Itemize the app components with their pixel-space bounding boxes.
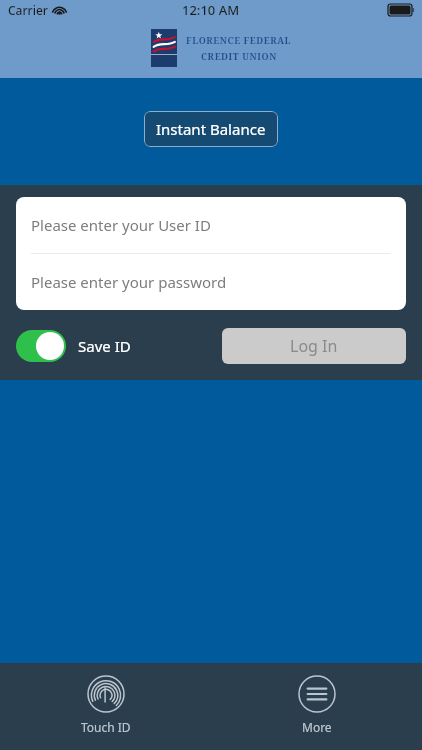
button[interactable]: Log In	[222, 328, 406, 364]
staticText: FLORENCE FEDERAL	[186, 34, 292, 46]
button[interactable]: Save ID	[16, 330, 131, 362]
button[interactable]: Touch ID	[57, 673, 155, 737]
button[interactable]: Please enter your User ID	[16, 197, 406, 253]
staticText: Please enter your User ID	[31, 215, 211, 235]
staticText: Save ID	[78, 336, 131, 356]
button[interactable]: Please enter your password	[16, 254, 406, 310]
staticText: More	[302, 719, 332, 735]
button[interactable]: More	[274, 673, 360, 737]
staticText: Touch ID	[81, 719, 131, 735]
staticText: Instant Balance	[156, 119, 266, 139]
button[interactable]: Instant Balance	[144, 111, 278, 147]
staticText: Carrier	[8, 2, 48, 18]
staticText: CREDIT UNION	[201, 50, 277, 62]
staticText: 12:10 AM	[182, 1, 240, 19]
staticText: Log In	[290, 335, 338, 357]
staticText: Please enter your password	[31, 272, 227, 292]
